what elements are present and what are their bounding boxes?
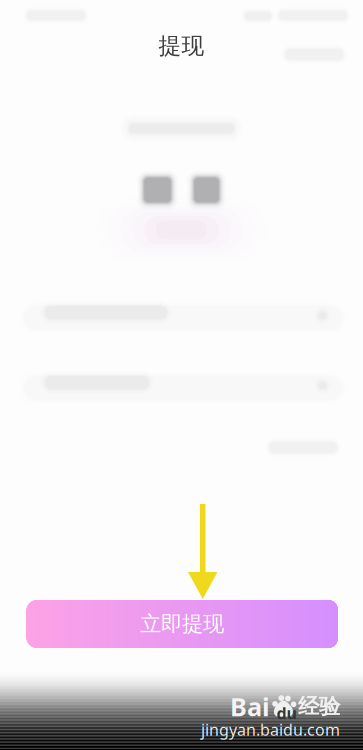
staticText: Bai [230,690,270,723]
staticText: du [277,702,297,724]
staticText: 立即提现 [140,611,224,637]
staticText: 提现 [158,32,204,60]
button[interactable]: 提现记录 [274,38,354,71]
button[interactable]: 立即提现 [26,600,338,648]
staticText: jingyan.baidu.com [201,719,340,740]
staticText: 经验 [298,693,340,720]
